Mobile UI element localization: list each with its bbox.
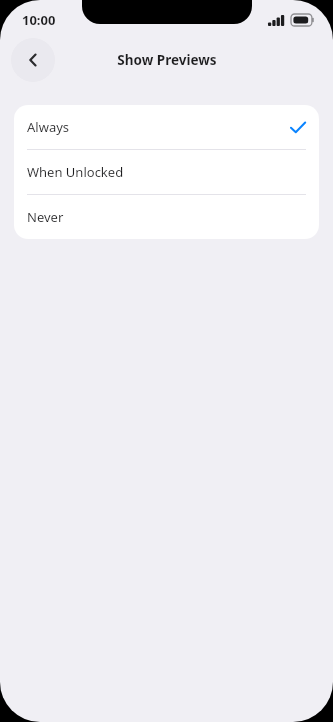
staticText: Always [27, 118, 70, 136]
staticText: When Unlocked [27, 163, 124, 181]
button[interactable]: Never [14, 195, 319, 239]
staticText: 10:00 [22, 11, 56, 29]
staticText: Never [27, 208, 64, 226]
staticText: Show Previews [117, 51, 217, 69]
button[interactable]: When Unlocked [14, 150, 319, 194]
button[interactable]: Always [14, 105, 319, 149]
button[interactable]: Back [11, 38, 55, 82]
